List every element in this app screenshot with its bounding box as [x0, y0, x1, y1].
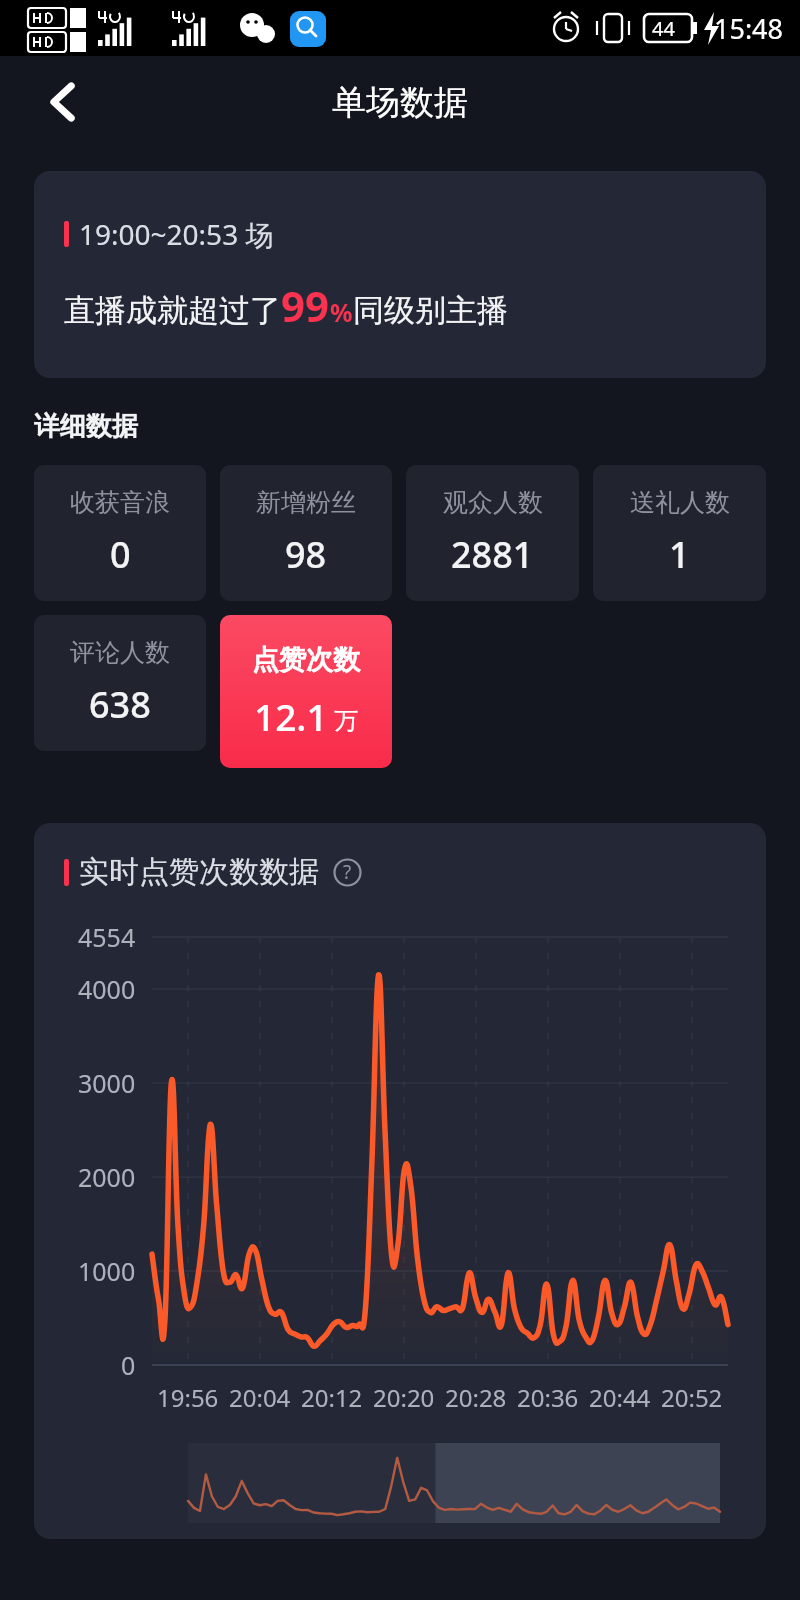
staticText: 新增粉丝: [256, 487, 356, 518]
staticText: 1: [669, 530, 690, 579]
staticText: 98: [285, 530, 327, 579]
staticText: 19:00~20:53 场: [79, 215, 274, 253]
staticText: 送礼人数: [630, 487, 730, 518]
staticText: 12.1: [254, 691, 328, 741]
staticText: 评论人数: [70, 637, 170, 668]
staticText: 同级别主播: [353, 291, 508, 330]
button[interactable]: 19:00~20:53 场: [34, 171, 766, 378]
staticText: 万: [334, 706, 358, 736]
staticText: 44: [652, 15, 675, 42]
button[interactable]: Help: [331, 856, 363, 888]
button[interactable]: 实时点赞次数数据: [64, 853, 363, 891]
button[interactable]: 新增粉丝: [220, 465, 392, 601]
button[interactable]: 点赞次数: [220, 615, 392, 768]
button[interactable]: 送礼人数: [593, 465, 766, 601]
staticText: 99: [281, 277, 330, 334]
button[interactable]: 观众人数: [406, 465, 579, 601]
staticText: 2881: [451, 530, 534, 579]
staticText: ?: [343, 859, 352, 885]
staticText: 直播成就超过了: [64, 291, 281, 330]
staticText: 观众人数: [443, 487, 543, 518]
staticText: 点赞次数: [252, 643, 360, 677]
button[interactable]: Back: [30, 69, 96, 135]
staticText: 0: [110, 530, 131, 579]
button[interactable]: 收获音浪: [34, 465, 206, 601]
staticText: 638: [89, 680, 151, 729]
staticText: 收获音浪: [70, 487, 170, 518]
staticText: 15:48: [714, 10, 784, 47]
staticText: 单场数据: [332, 81, 468, 124]
staticText: 实时点赞次数数据: [79, 853, 319, 891]
staticText: %: [330, 295, 353, 329]
button[interactable]: 评论人数: [34, 615, 206, 751]
staticText: 详细数据: [34, 410, 138, 443]
button[interactable]: Realtime likes chart: [34, 913, 766, 1483]
